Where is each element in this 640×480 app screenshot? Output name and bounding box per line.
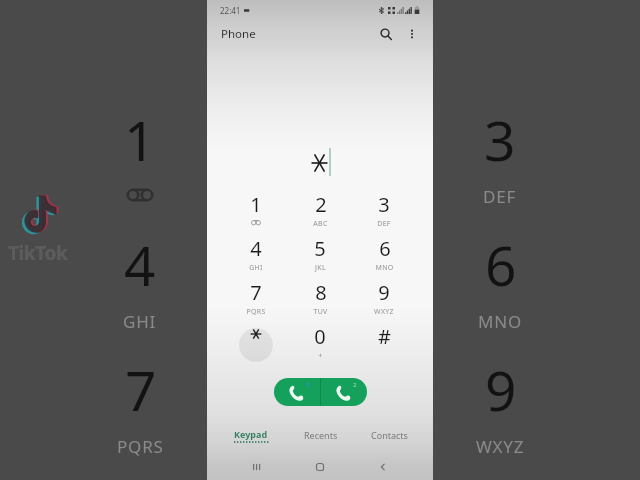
staticText: # (378, 323, 391, 344)
staticText: Keypad (234, 428, 268, 440)
staticText: TikTok (8, 240, 68, 266)
staticText: WXYZ (374, 307, 394, 317)
button[interactable]: 3 (352, 190, 416, 234)
button[interactable] (224, 322, 288, 366)
staticText: 1 (306, 381, 310, 389)
button[interactable]: Keypad (216, 424, 286, 446)
button[interactable]: 4 (224, 234, 288, 278)
staticText: 4 (124, 227, 156, 302)
staticText: GHI (249, 263, 263, 273)
button[interactable]: Contacts (355, 424, 424, 446)
staticText: Recents (304, 429, 338, 441)
staticText: 7 (250, 279, 262, 300)
staticText: DEF (377, 219, 391, 229)
button[interactable]: 9 (352, 278, 416, 322)
staticText: 3 (378, 191, 390, 212)
button[interactable]: 6 (352, 234, 416, 278)
button[interactable]: 8 (288, 278, 352, 322)
button[interactable]: Search (375, 23, 397, 45)
button[interactable]: 2 (288, 190, 352, 234)
staticText: 4 (250, 235, 262, 256)
staticText: MNO (478, 310, 523, 333)
staticText: 8 (315, 279, 327, 300)
button[interactable]: 7 (224, 278, 288, 322)
staticText: 1 (124, 102, 156, 177)
button[interactable]: 0 (288, 322, 352, 366)
staticText: PQRS (117, 435, 164, 458)
staticText: + (318, 351, 323, 361)
staticText: TUV (313, 307, 328, 317)
button[interactable]: Call with SIM 1 (274, 378, 320, 406)
button[interactable]: Call with SIM 2 (321, 378, 367, 406)
button[interactable]: 1 (224, 190, 288, 234)
staticText: 6 (379, 235, 391, 256)
button[interactable]: Recent apps (226, 455, 288, 479)
staticText: JKL (315, 263, 326, 273)
button[interactable]: Home (288, 455, 351, 479)
staticText: ABC (313, 219, 328, 229)
staticText: Contacts (371, 429, 408, 441)
staticText: 7 (125, 352, 157, 427)
staticText: PQRS (246, 307, 266, 317)
staticText: 22:41 (220, 5, 241, 16)
button[interactable]: # (352, 322, 416, 366)
staticText: 9 (378, 279, 390, 300)
staticText: 6 (485, 227, 517, 302)
staticText: GHI (123, 310, 157, 333)
staticText: 1 (250, 191, 262, 212)
staticText: 3 (484, 102, 516, 177)
staticText: Phone (221, 26, 256, 42)
staticText: DEF (483, 185, 517, 208)
staticText: 9 (485, 352, 517, 427)
staticText: 2 (315, 191, 327, 212)
staticText: 5 (314, 235, 326, 256)
button[interactable]: 5 (288, 234, 352, 278)
staticText: WXYZ (476, 435, 525, 458)
button[interactable]: More options (401, 23, 423, 45)
staticText: 2 (353, 381, 357, 389)
staticText: MNO (375, 263, 394, 273)
button[interactable]: Back (351, 455, 414, 479)
button[interactable]: Recents (286, 424, 355, 446)
staticText: 0 (314, 323, 326, 344)
